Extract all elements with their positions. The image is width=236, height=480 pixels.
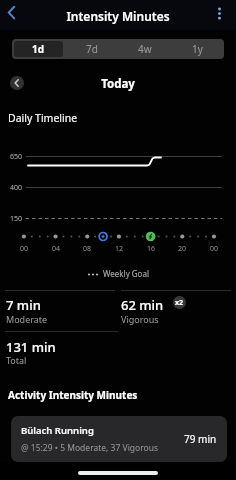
staticText: 150: [2, 214, 22, 224]
button[interactable]: 1d: [14, 41, 63, 57]
staticText: 400: [2, 183, 22, 193]
staticText: 04: [48, 244, 64, 254]
button[interactable]: 1y: [171, 39, 224, 59]
staticText: 131 min: [6, 338, 56, 356]
staticText: Weekly Goal: [103, 268, 150, 279]
staticText: 4w: [138, 42, 152, 56]
staticText: 1y: [192, 42, 203, 56]
staticText: Bülach Running: [21, 424, 94, 437]
staticText: 7 min: [6, 296, 41, 314]
staticText: 79 min: [184, 432, 217, 446]
button[interactable]: [208, 2, 231, 25]
staticText: 650: [2, 152, 22, 162]
button[interactable]: [10, 76, 24, 90]
staticText: Activity Intensity Minutes: [8, 388, 138, 402]
staticText: 62 min: [121, 296, 164, 314]
staticText: 08: [79, 244, 95, 254]
staticText: 00: [206, 244, 222, 254]
button[interactable]: 7d: [65, 39, 118, 59]
staticText: 16: [143, 244, 159, 254]
staticText: 00: [16, 244, 32, 254]
staticText: x2: [175, 298, 184, 308]
staticText: Moderate: [6, 313, 48, 325]
staticText: 1d: [32, 42, 45, 56]
staticText: Total: [6, 354, 27, 366]
button[interactable]: [6, 4, 28, 26]
button[interactable]: 4w: [118, 39, 171, 59]
button[interactable]: Bülach Running: [11, 416, 227, 462]
staticText: 20: [174, 244, 190, 254]
staticText: Vigorous: [121, 313, 159, 325]
staticText: Intensity Minutes: [0, 8, 236, 24]
staticText: Daily Timeline: [8, 111, 78, 125]
staticText: @ 15:29 • 5 Moderate, 37 Vigorous: [21, 442, 159, 454]
staticText: 7d: [86, 42, 98, 56]
staticText: 12: [111, 244, 127, 254]
staticText: Today: [0, 76, 236, 92]
